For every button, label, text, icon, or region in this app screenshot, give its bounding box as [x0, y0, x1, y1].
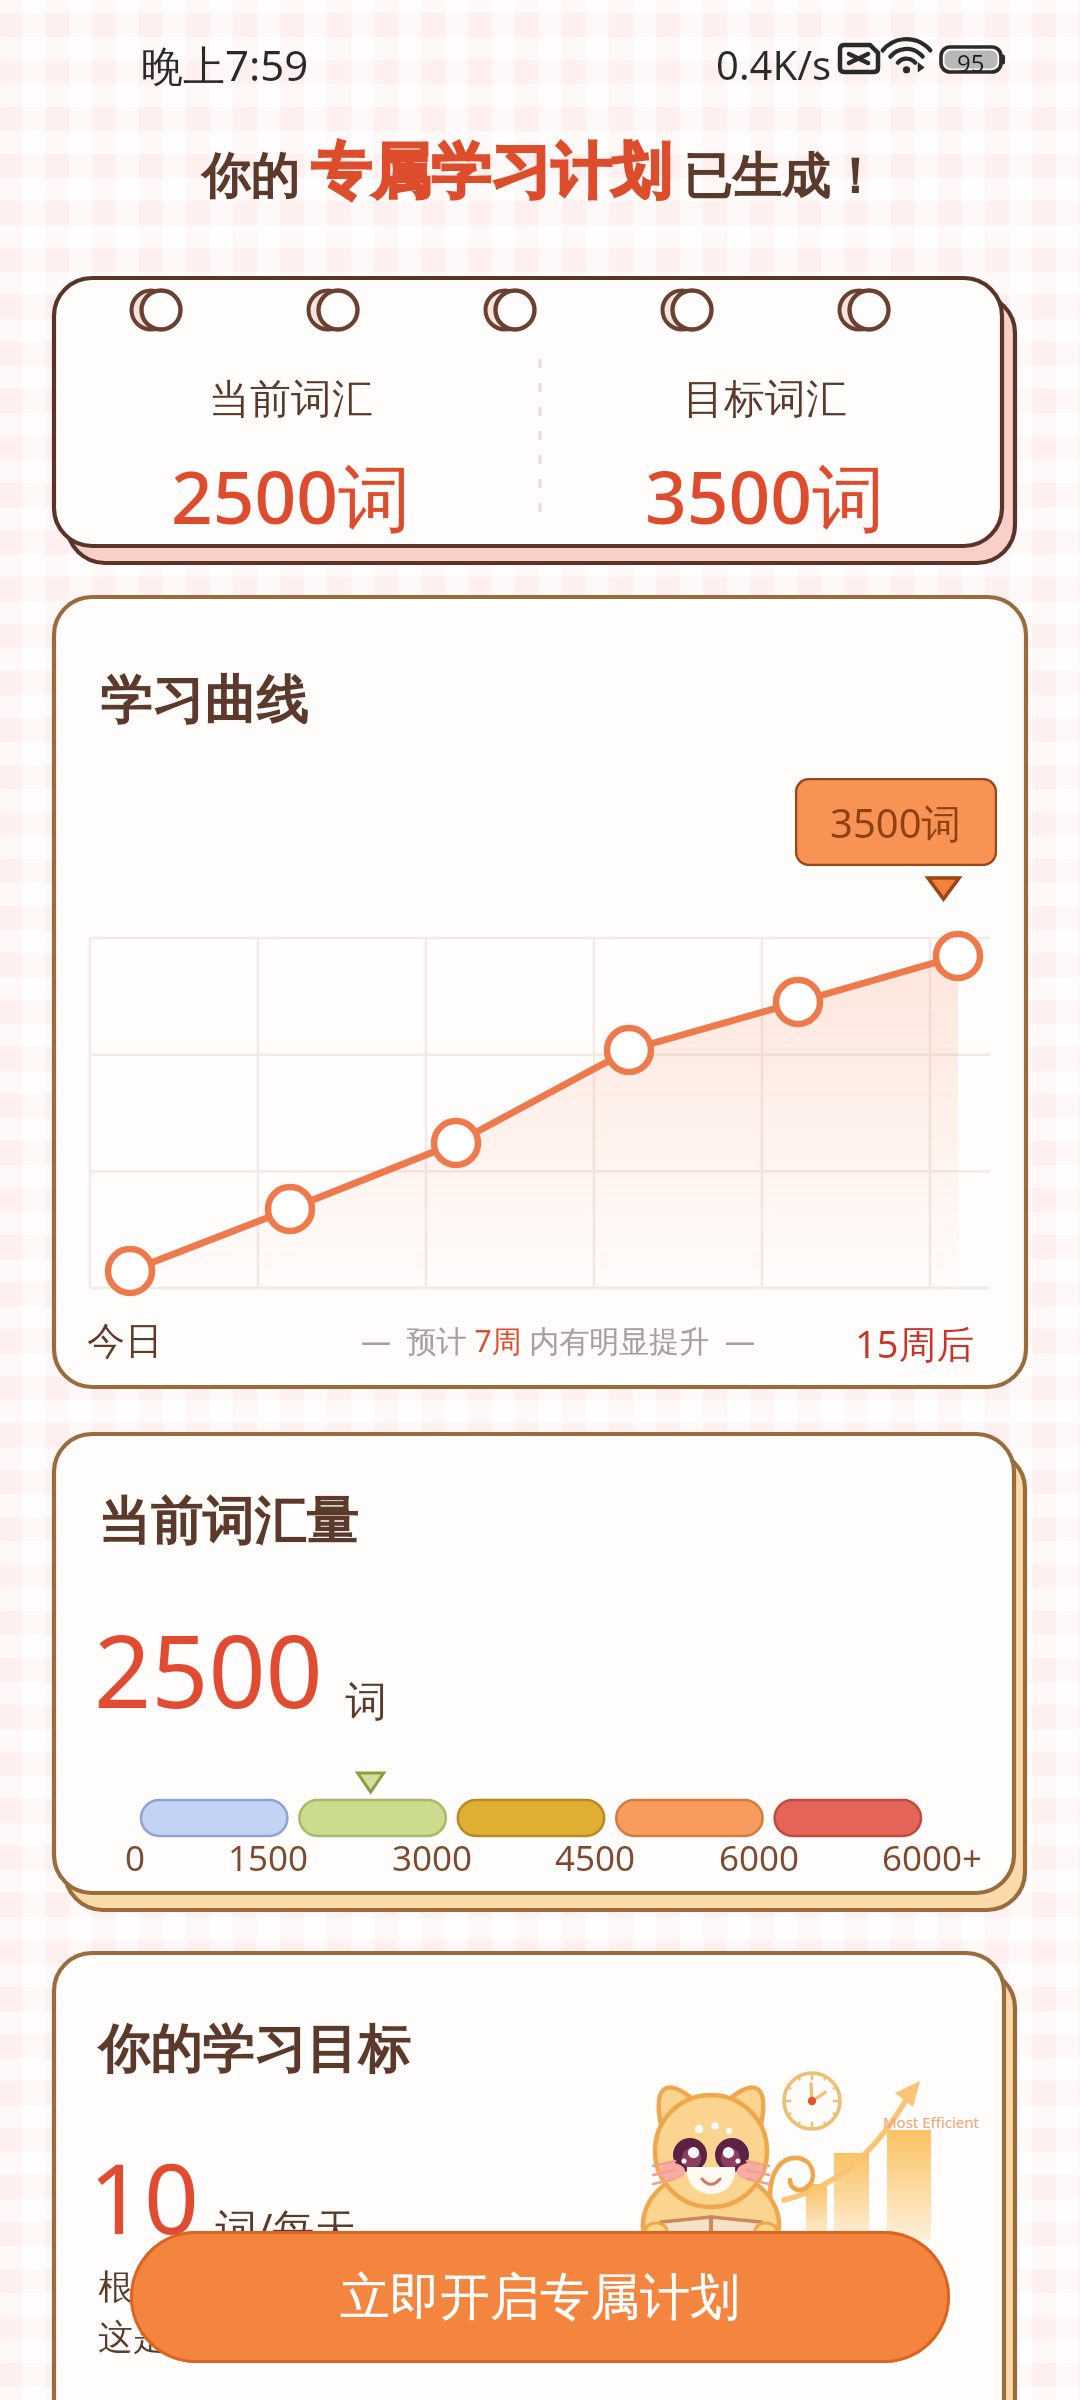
staticText: 0.4K/s [716, 37, 832, 91]
staticText: 3500词 [830, 795, 962, 850]
staticText: 你的学习目标 [98, 2017, 410, 2083]
staticText: 这是最适合你的节奏 [98, 2315, 413, 2359]
staticText: 2500 [94, 1601, 323, 1737]
staticText: 根据你的基础和目标， [98, 2265, 448, 2309]
staticText: 词 [345, 1676, 387, 1729]
staticText: Most Efficient [883, 2112, 979, 2132]
staticText: 0 [125, 1834, 146, 1882]
staticText: 95 [957, 46, 985, 71]
staticText: 立即开启专属计划 [340, 2266, 740, 2329]
staticText: 3500词 [645, 446, 886, 546]
staticText: — 预计 7周 内有明显提升 — [361, 1320, 755, 1361]
staticText: 当前词汇 [209, 374, 373, 426]
staticText: 晚上7:59 [141, 36, 309, 93]
staticText: 词/每天 [215, 2199, 357, 2256]
staticText: 今日 [87, 1317, 163, 1365]
staticText: 你的 [201, 146, 299, 208]
staticText: 当前词汇量 [98, 1489, 358, 1555]
staticText: 1500 [228, 1834, 309, 1882]
staticText: 2500词 [171, 446, 412, 546]
staticText: 学习曲线 [100, 668, 308, 734]
staticText: 已生成！ [683, 146, 879, 208]
staticText: 6000 [719, 1834, 800, 1882]
button[interactable]: 立即开启专属计划 [130, 2231, 950, 2363]
staticText: 15周后 [855, 1317, 975, 1369]
staticText: 3000 [392, 1834, 473, 1882]
staticText: 专属学习计划 [311, 134, 671, 210]
staticText: 6000+ [882, 1834, 983, 1882]
staticText: 目标词汇 [683, 374, 847, 426]
staticText: 10 [89, 2131, 199, 2262]
staticText: 4500 [555, 1834, 636, 1882]
